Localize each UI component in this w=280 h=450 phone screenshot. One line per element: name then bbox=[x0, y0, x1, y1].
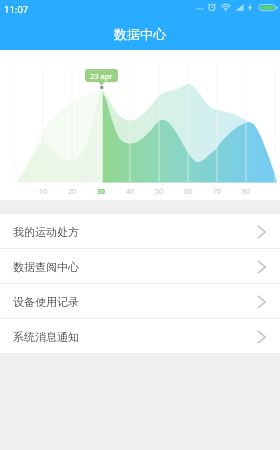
button[interactable]: 设备使用记录 bbox=[0, 284, 280, 319]
staticText: 60 bbox=[184, 187, 193, 197]
staticText: 70 bbox=[213, 187, 222, 197]
staticText: 数据中心 bbox=[114, 26, 166, 42]
staticText: 10 bbox=[39, 187, 48, 197]
staticText: 23 apr bbox=[90, 71, 113, 81]
staticText: 80 bbox=[242, 187, 251, 197]
staticText: 40 bbox=[126, 187, 135, 197]
button[interactable]: 我的运动处方 bbox=[0, 214, 280, 249]
staticText: 系统消息通知 bbox=[13, 330, 79, 344]
staticText: 30 bbox=[97, 187, 106, 197]
staticText: 50 bbox=[155, 187, 164, 197]
staticText: 我的运动处方 bbox=[13, 225, 79, 239]
button[interactable]: 数据查阅中心 bbox=[0, 249, 280, 284]
staticText: 数据查阅中心 bbox=[13, 260, 79, 274]
staticText: 11:07 bbox=[4, 3, 29, 16]
button[interactable]: 系统消息通知 bbox=[0, 319, 280, 354]
staticText: 设备使用记录 bbox=[13, 295, 79, 309]
staticText: 20 bbox=[68, 187, 77, 197]
